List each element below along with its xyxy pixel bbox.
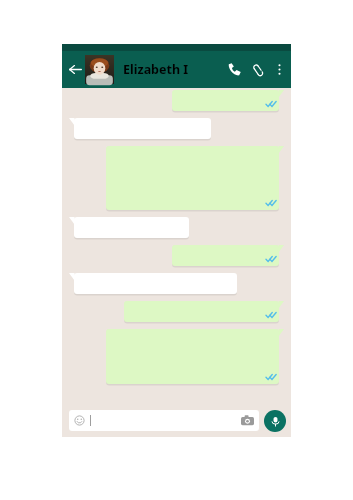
button[interactable]: Back [65, 51, 85, 88]
button[interactable] [106, 146, 284, 210]
button[interactable] [172, 90, 284, 111]
button[interactable] [106, 329, 284, 384]
button[interactable]: Camera [69, 410, 259, 431]
button[interactable]: Attach [246, 51, 270, 88]
button[interactable]: Contact photo [85, 55, 114, 84]
button[interactable]: Camera [241, 414, 254, 427]
button[interactable] [124, 301, 284, 322]
button[interactable] [69, 273, 237, 294]
button[interactable]: Call [222, 51, 246, 88]
button[interactable] [69, 118, 211, 139]
button[interactable] [69, 217, 189, 238]
button[interactable] [172, 245, 284, 266]
staticText: Elizabeth I [123, 61, 189, 78]
button[interactable]: More options [270, 51, 289, 88]
button[interactable]: Voice message [264, 410, 286, 432]
